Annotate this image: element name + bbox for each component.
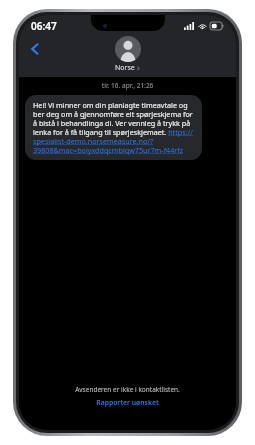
button[interactable]: Hei! Vi minner om din planlagte timeavta… [25,95,202,160]
staticText: tir. 16. apr., 21:26 [19,81,236,90]
staticText: Hei! Vi minner om din planlagte timeavta… [33,100,194,155]
staticText: Rapporter uønsket [96,398,159,407]
button[interactable]: Norse [19,36,236,73]
staticText: Norse [115,63,135,73]
staticText: Avsenderen er ikke i kontaktlisten. [75,385,180,394]
staticText: 06:47 [31,19,57,33]
button[interactable]: Rapporter uønsket [90,397,165,408]
button[interactable]: Back [23,37,47,61]
